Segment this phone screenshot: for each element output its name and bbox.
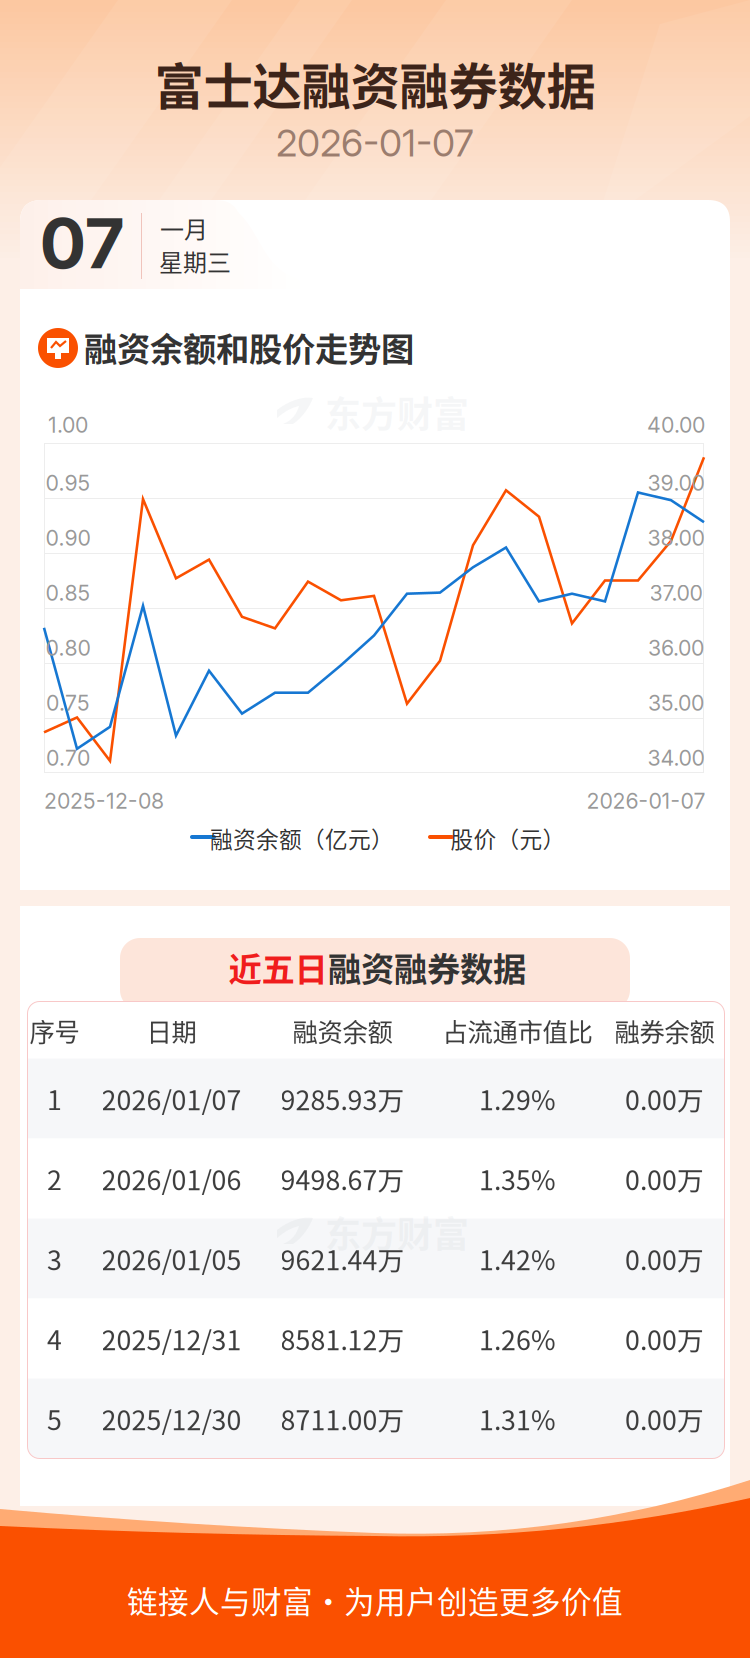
staticText: 1.31%: [479, 1399, 556, 1438]
staticText: 2025/12/30: [101, 1399, 241, 1438]
staticText: 0.85: [45, 580, 90, 606]
staticText: 融资融券数据: [328, 943, 526, 991]
staticText: 0.00万: [625, 1399, 704, 1438]
staticText: 0.75: [46, 690, 90, 716]
staticText: 35.00: [648, 690, 704, 716]
staticText: 2026/01/06: [101, 1159, 241, 1198]
staticText: 一月: [160, 211, 208, 245]
staticText: 2026/01/05: [101, 1239, 241, 1278]
staticText: 东方财富: [325, 386, 469, 438]
staticText: 富士达融资融券数据: [154, 47, 595, 119]
staticText: 2025-12-08: [44, 788, 164, 814]
staticText: 37.00: [649, 580, 702, 606]
staticText: 38.00: [647, 525, 704, 551]
staticText: 0.00万: [625, 1079, 704, 1118]
staticText: 0.00万: [625, 1319, 704, 1358]
staticText: 8581.12万: [280, 1319, 404, 1358]
staticText: 股价（元）: [450, 822, 565, 854]
staticText: 0.80: [45, 635, 90, 661]
staticText: 1.35%: [479, 1159, 556, 1198]
staticText: 2: [47, 1159, 62, 1198]
staticText: 1.42%: [479, 1239, 556, 1278]
staticText: 融资余额和股价走势图: [84, 323, 414, 371]
staticText: 9621.44万: [280, 1239, 404, 1278]
staticText: 融券余额: [614, 1012, 714, 1049]
staticText: 0.70: [46, 745, 90, 771]
staticText: 2026-01-07: [586, 788, 705, 814]
staticText: 融资余额: [292, 1012, 392, 1049]
staticText: 39.00: [647, 470, 704, 496]
staticText: 2025/12/31: [101, 1319, 241, 1358]
staticText: 融资余额（亿元）: [210, 822, 394, 854]
staticText: 0.00万: [625, 1239, 704, 1278]
staticText: 东方财富: [325, 1206, 469, 1258]
staticText: 0.90: [45, 525, 90, 551]
staticText: 1.26%: [479, 1319, 556, 1358]
staticText: 07: [39, 201, 124, 285]
staticText: 0.00万: [625, 1159, 704, 1198]
staticText: 9285.93万: [280, 1079, 404, 1118]
staticText: 0.95: [45, 470, 90, 496]
staticText: 近五日: [228, 943, 327, 991]
staticText: 34.00: [647, 745, 704, 771]
staticText: 1.00: [48, 412, 88, 438]
staticText: 日期: [146, 1012, 196, 1049]
staticText: 1: [47, 1079, 62, 1118]
staticText: 4: [47, 1319, 62, 1358]
staticText: 3: [47, 1239, 62, 1278]
staticText: 40.00: [647, 412, 705, 438]
staticText: 5: [47, 1399, 62, 1438]
staticText: 36.00: [648, 635, 704, 661]
staticText: 8711.00万: [280, 1399, 404, 1438]
staticText: 占流通市值比: [442, 1012, 592, 1049]
staticText: 序号: [29, 1012, 79, 1049]
staticText: 2026-01-07: [276, 120, 474, 166]
staticText: 链接人与财富·为用户创造更多价值: [127, 1578, 623, 1622]
staticText: 星期三: [159, 244, 231, 278]
staticText: 9498.67万: [280, 1159, 404, 1198]
staticText: 2026/01/07: [101, 1079, 241, 1118]
staticText: 1.29%: [479, 1079, 556, 1118]
